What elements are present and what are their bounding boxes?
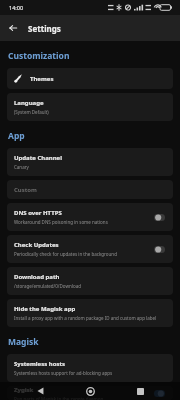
- staticText: Settings: [28, 23, 61, 34]
- staticText: App: [8, 130, 25, 142]
- button[interactable]: Navigate up: [3, 18, 23, 38]
- staticText: Themes: [30, 75, 54, 83]
- staticText: Canary: [14, 164, 29, 170]
- staticText: /storage/emulated/0/Download: [14, 283, 81, 289]
- button[interactable]: Zygisk: [7, 386, 173, 400]
- button[interactable]: Language: [7, 93, 173, 121]
- button[interactable]: Check Updates: [7, 235, 173, 263]
- staticText: Hide the Magisk app: [14, 305, 76, 313]
- staticText: Systemless hosts: [14, 360, 66, 368]
- button[interactable]: Custom: [7, 180, 173, 199]
- staticText: Check Updates: [14, 241, 59, 249]
- button[interactable]: Home: [80, 382, 100, 400]
- staticText: DNS over HTTPS: [14, 209, 62, 217]
- button[interactable]: Download path: [7, 267, 173, 295]
- staticText: Custom: [14, 186, 37, 194]
- button[interactable]: Systemless hosts: [7, 354, 173, 382]
- staticText: Download path: [14, 273, 60, 281]
- button[interactable]: Recent apps: [130, 382, 150, 400]
- staticText: Magisk: [8, 336, 39, 348]
- button[interactable]: Update Channel: [7, 148, 173, 176]
- staticText: Customization: [8, 50, 70, 62]
- staticText: Install a proxy app with a random packag…: [14, 315, 157, 321]
- button[interactable]: Themes: [7, 68, 173, 89]
- button[interactable]: Back: [30, 382, 50, 400]
- button[interactable]: DNS over HTTPS: [7, 203, 173, 231]
- staticText: (System Default): [14, 109, 49, 115]
- button[interactable]: Hide the Magisk app: [7, 299, 173, 327]
- staticText: Run parts of Magisk in the zygote daemon: [14, 396, 104, 400]
- staticText: Periodically check for updates in the ba…: [14, 251, 117, 257]
- staticText: Update Channel: [14, 154, 62, 162]
- staticText: Zygisk: [14, 386, 34, 394]
- staticText: Workaround DNS poisoning in some nations: [14, 219, 108, 225]
- staticText: Language: [14, 99, 44, 107]
- staticText: Systemless hosts support for ad-blocking…: [14, 370, 113, 376]
- staticText: 14:00: [9, 4, 24, 11]
